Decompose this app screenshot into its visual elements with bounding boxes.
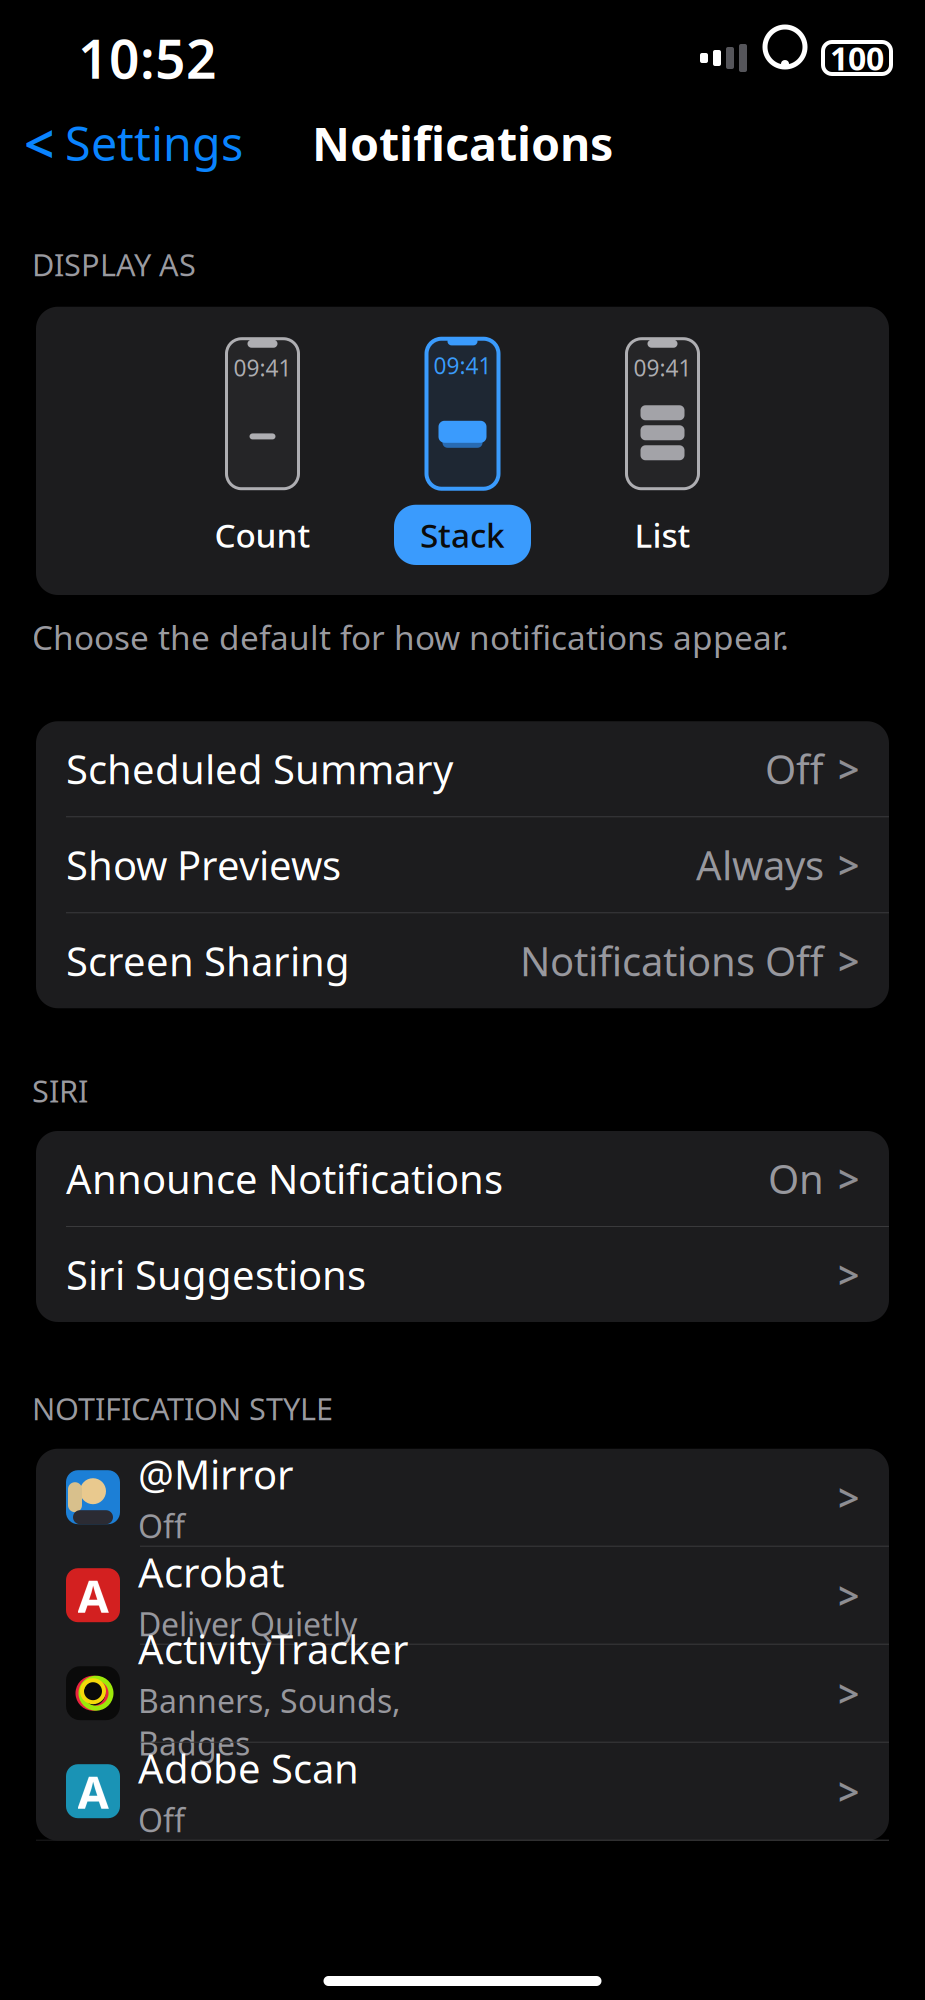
button[interactable]: < bbox=[0, 108, 267, 178]
staticText: 09:41 bbox=[433, 350, 491, 380]
button[interactable]: Screen Sharing bbox=[36, 913, 889, 1008]
button[interactable]: Siri Suggestions bbox=[36, 1227, 889, 1322]
staticText: > bbox=[838, 744, 859, 794]
button[interactable]: Scheduled Summary bbox=[36, 721, 889, 816]
staticText: Show Previews bbox=[66, 838, 341, 891]
staticText: Count bbox=[214, 513, 310, 557]
button[interactable]: @Mirror bbox=[36, 1449, 889, 1546]
button[interactable]: Show Previews bbox=[36, 817, 889, 912]
staticText: > bbox=[838, 840, 859, 890]
staticText: A bbox=[77, 1565, 108, 1625]
button[interactable]: A bbox=[36, 1547, 889, 1644]
staticText: > bbox=[838, 1570, 859, 1620]
staticText: Choose the default for how notifications… bbox=[32, 615, 789, 659]
button[interactable]: 09:41 bbox=[162, 337, 362, 565]
staticText: Deliver Quietly bbox=[138, 1602, 357, 1645]
staticText: 09:41 bbox=[633, 353, 691, 383]
staticText: > bbox=[838, 1668, 859, 1718]
staticText: @Mirror bbox=[138, 1447, 294, 1500]
staticText: List bbox=[634, 513, 690, 557]
staticText: Always bbox=[696, 838, 824, 891]
button[interactable]: Announce Notifications bbox=[36, 1131, 889, 1226]
staticText: Stack bbox=[420, 513, 505, 557]
staticText: A bbox=[77, 1761, 108, 1821]
staticText: 100 bbox=[830, 37, 884, 79]
staticText: ActivityTracker bbox=[138, 1622, 409, 1675]
staticText: Banners, Sounds, Badges bbox=[138, 1679, 401, 1764]
button[interactable]: 09:41 bbox=[562, 337, 762, 565]
staticText: Acrobat bbox=[138, 1545, 284, 1598]
staticText: Off bbox=[138, 1504, 185, 1547]
button[interactable]: ActivityTracker bbox=[36, 1645, 889, 1742]
staticText: 09:41 bbox=[233, 353, 291, 383]
button[interactable]: A bbox=[36, 1743, 889, 1840]
staticText: Off bbox=[765, 742, 824, 795]
staticText: > bbox=[838, 1766, 859, 1816]
staticText: Scheduled Summary bbox=[66, 742, 453, 795]
staticText: Settings bbox=[65, 112, 243, 174]
staticText: Off bbox=[138, 1798, 185, 1841]
button[interactable]: 09:41 bbox=[362, 337, 562, 565]
staticText: Notifications bbox=[312, 112, 613, 174]
staticText: 10:52 bbox=[78, 23, 217, 93]
staticText: < bbox=[24, 108, 55, 178]
staticText: Notifications Off bbox=[520, 934, 824, 987]
staticText: Announce Notifications bbox=[66, 1152, 503, 1205]
staticText: > bbox=[838, 1472, 859, 1522]
staticText: Adobe Scan bbox=[138, 1741, 359, 1794]
staticText: NOTIFICATION STYLE bbox=[32, 1388, 333, 1429]
staticText: > bbox=[838, 1154, 859, 1203]
staticText: SIRI bbox=[32, 1070, 88, 1111]
staticText: DISPLAY AS bbox=[32, 244, 196, 285]
staticText: On bbox=[768, 1152, 824, 1205]
staticText: Screen Sharing bbox=[66, 934, 350, 987]
staticText: > bbox=[838, 1250, 859, 1299]
staticText: Siri Suggestions bbox=[66, 1248, 366, 1301]
staticText: > bbox=[838, 936, 859, 986]
